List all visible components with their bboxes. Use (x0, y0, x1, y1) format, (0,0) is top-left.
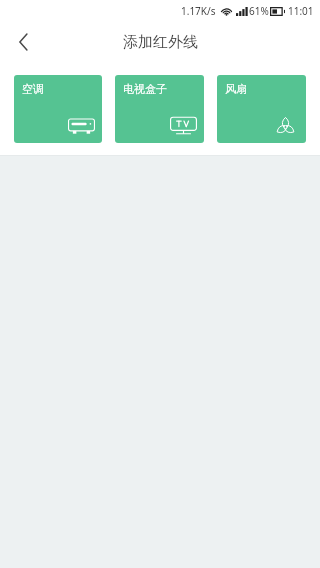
staticText: 添加红外线 (123, 33, 198, 52)
button[interactable]: Back (0, 22, 46, 62)
button[interactable]: 空调 (14, 75, 102, 143)
button[interactable]: 电视盒子 (115, 75, 204, 143)
staticText: 61% (249, 4, 269, 18)
staticText: 1.17K/s (181, 4, 216, 18)
staticText: 空调 (22, 82, 44, 96)
button[interactable]: 风扇 (217, 75, 306, 143)
staticText: 风扇 (225, 82, 247, 96)
staticText: 电视盒子 (123, 82, 167, 96)
staticText: 11:01 (288, 4, 314, 18)
